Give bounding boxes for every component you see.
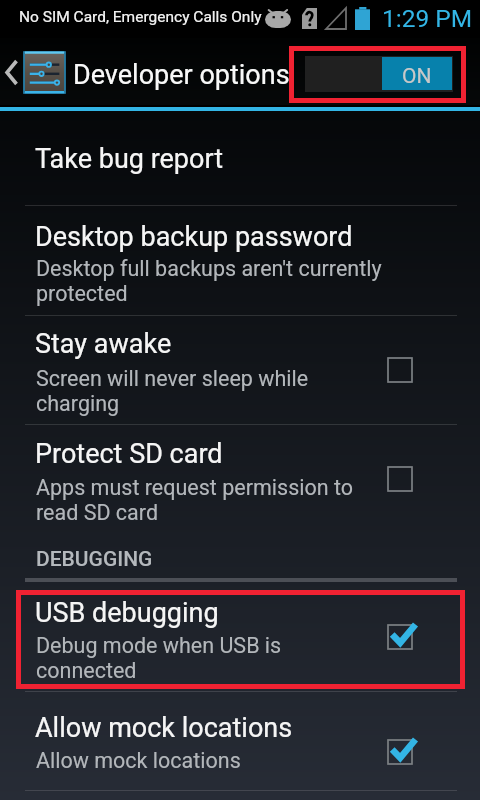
staticText: DEBUGGING — [36, 547, 153, 572]
button[interactable]: Not checked — [378, 457, 422, 501]
staticText: Protect SD card — [35, 438, 223, 470]
staticText: Take bug report — [35, 143, 224, 175]
staticText: Desktop backup password — [35, 221, 353, 253]
staticText: Allow mock locations — [35, 712, 293, 744]
button[interactable]: Developer options switch, on — [305, 56, 453, 92]
staticText: Allow mock locations — [36, 748, 241, 773]
button[interactable]: Allow mock locations — [0, 692, 480, 790]
button[interactable]: Checked — [378, 615, 422, 659]
button[interactable]: Checked — [378, 730, 422, 774]
staticText: USB debugging — [35, 597, 219, 629]
staticText: Debug mode when USB is connected — [36, 633, 282, 683]
button[interactable]: Protect SD card — [0, 425, 480, 535]
button[interactable]: USB debugging — [0, 591, 480, 687]
staticText: ON — [402, 64, 432, 89]
button[interactable]: Take bug report — [0, 111, 480, 205]
staticText: 1:29 PM — [382, 4, 473, 33]
button[interactable]: Desktop backup password — [0, 206, 480, 315]
button[interactable]: Navigate up — [0, 38, 70, 106]
staticText: Desktop full backups aren't currently pr… — [36, 256, 382, 306]
staticText: Apps must request permission to read SD … — [36, 475, 354, 525]
staticText: Developer options — [73, 59, 290, 91]
button[interactable]: Not checked — [378, 348, 422, 392]
staticText: Stay awake — [35, 328, 172, 360]
staticText: Screen will never sleep while charging — [36, 366, 309, 416]
staticText: No SIM Card, Emergency Calls Only — [19, 8, 262, 26]
button[interactable]: Stay awake — [0, 316, 480, 424]
